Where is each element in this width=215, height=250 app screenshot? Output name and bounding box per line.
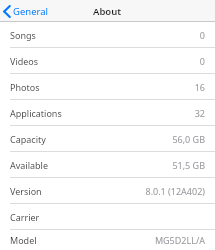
staticText: 32 [194,107,205,119]
staticText: Available [10,159,48,171]
staticText: General [13,5,49,18]
button[interactable]: Model [0,230,215,250]
button[interactable]: Photos [0,74,215,99]
staticText: 56,0 GB [172,133,205,145]
button[interactable]: Videos [0,48,215,73]
staticText: Capacity [10,133,46,145]
button[interactable]: Applications [0,100,215,125]
staticText: Photos [10,81,40,93]
staticText: MG5D2LL/A [154,234,205,246]
button[interactable]: Capacity [0,126,215,151]
button[interactable]: General [0,0,55,22]
staticText: 51,5 GB [172,159,205,171]
staticText: Videos [10,55,39,67]
button[interactable]: Songs [0,22,215,47]
staticText: Carrier [10,211,40,223]
staticText: 16 [194,81,205,93]
staticText: Model [10,234,37,246]
button[interactable]: Carrier [0,204,215,229]
button[interactable]: Available [0,152,215,177]
staticText: About [93,5,122,18]
staticText: Songs [10,29,36,41]
staticText: 8.0.1 (12A402) [145,185,205,197]
staticText: Applications [10,107,62,119]
staticText: Version [10,185,42,197]
button[interactable]: Version [0,178,215,203]
staticText: 0 [199,29,205,41]
staticText: 0 [199,55,205,67]
